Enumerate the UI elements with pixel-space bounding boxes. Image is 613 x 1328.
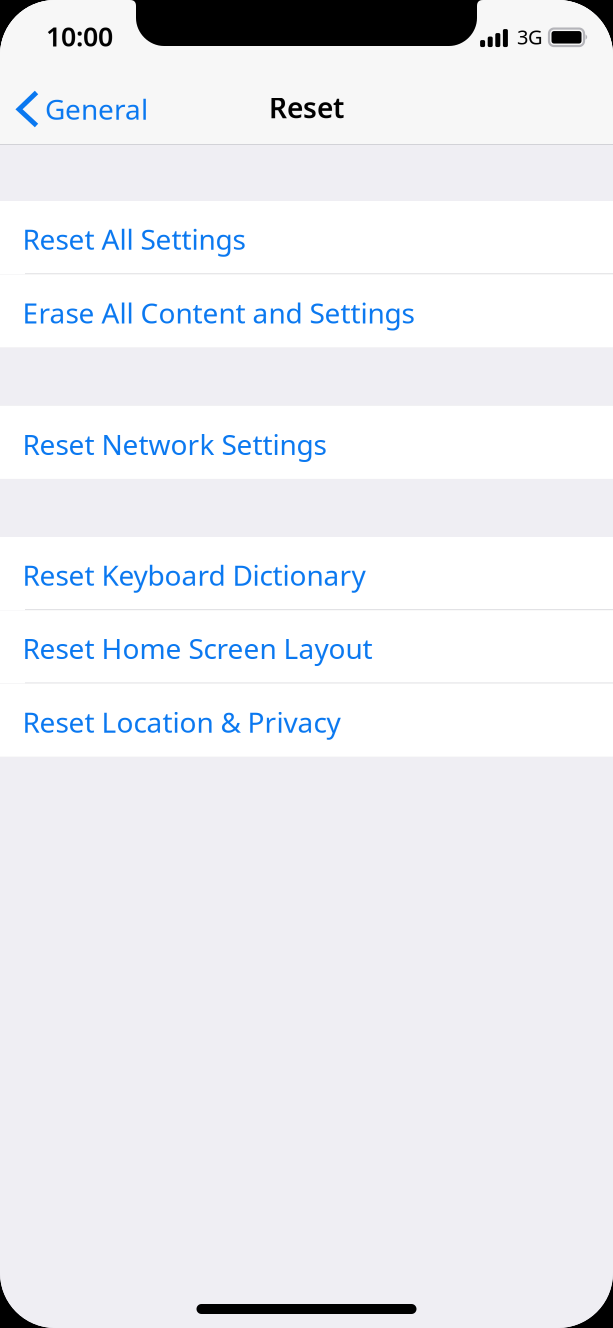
button[interactable]: Reset Network Settings (0, 406, 613, 479)
staticText: 10:00 (46, 18, 113, 54)
staticText: General (45, 90, 148, 128)
staticText: Reset Keyboard Dictionary (22, 556, 365, 593)
button[interactable]: Erase All Content and Settings (0, 274, 613, 348)
button[interactable]: Reset All Settings (0, 201, 613, 274)
staticText: Reset Home Screen Layout (22, 630, 372, 667)
staticText: Reset Network Settings (22, 425, 326, 463)
button[interactable]: Reset Location & Privacy (0, 683, 613, 757)
staticText: Reset All Settings (22, 220, 245, 258)
staticText: Reset Location & Privacy (22, 703, 340, 741)
button[interactable]: Reset Keyboard Dictionary (0, 537, 613, 610)
staticText: 3G (517, 23, 543, 50)
staticText: Erase All Content and Settings (22, 294, 414, 331)
button[interactable]: Reset Home Screen Layout (0, 610, 613, 683)
staticText: Reset (269, 89, 344, 126)
button[interactable]: General (0, 77, 158, 132)
